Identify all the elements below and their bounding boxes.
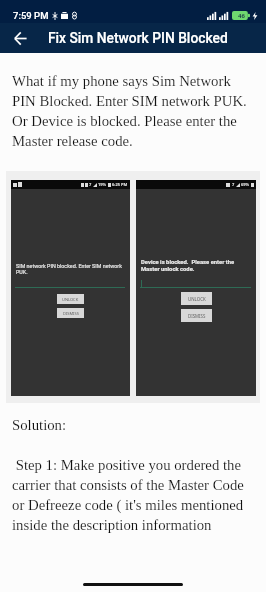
staticText: 46: [238, 12, 245, 20]
staticText: 69%: [241, 182, 250, 187]
staticText: Fix Sim Network PIN Blocked: [48, 30, 228, 46]
button[interactable]: DISMISS: [57, 308, 84, 318]
staticText: 7: [89, 182, 92, 187]
staticText: DISMISS: [188, 313, 206, 319]
staticText: 6:25 PM: [112, 182, 128, 187]
button[interactable]: DISMISS: [181, 309, 212, 322]
staticText: SIM network PIN blocked. Enter SIM netwo…: [16, 263, 122, 269]
staticText: 19%: [98, 182, 107, 187]
staticText: 7:59 PM: [13, 10, 49, 21]
staticText: DISMISS: [63, 311, 79, 316]
staticText: Device is blocked. Please enter the: [141, 259, 235, 266]
staticText: Solution:: [12, 417, 67, 433]
button[interactable]: UNLOCK: [181, 292, 212, 305]
staticText: UNLOCK: [62, 297, 79, 302]
button[interactable]: Back: [6, 24, 34, 52]
button[interactable]: UNLOCK: [57, 294, 84, 304]
staticText: Step 1: Make positive you ordered the ca…: [12, 457, 250, 539]
staticText: What if my phone says Sim Network PIN Bl…: [12, 73, 250, 149]
staticText: Master unlock code.: [141, 266, 195, 273]
staticText: PUK.: [16, 269, 28, 275]
staticText: UNLOCK: [188, 296, 206, 302]
staticText: 7: [232, 182, 235, 187]
